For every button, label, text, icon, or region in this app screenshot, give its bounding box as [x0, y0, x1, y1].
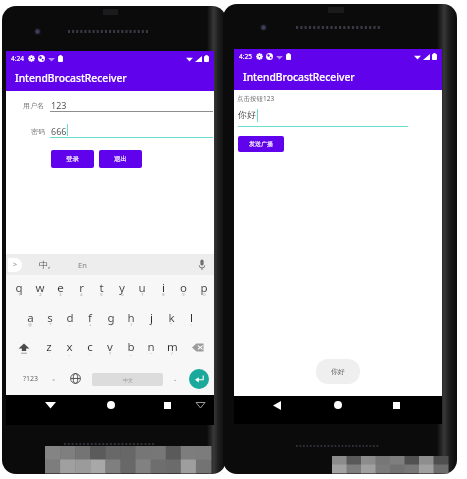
- staticText: !: [150, 322, 152, 327]
- staticText: ?123: [23, 374, 39, 384]
- staticText: 你好: [238, 109, 256, 120]
- staticText: b: [127, 339, 135, 355]
- staticText: /: [171, 351, 173, 356]
- button[interactable]: q: [9, 280, 29, 302]
- button[interactable]: l: [181, 310, 201, 332]
- button[interactable]: k: [161, 310, 181, 332]
- staticText: IntendBrocastReceiver: [15, 71, 127, 85]
- button[interactable]: d: [60, 310, 80, 332]
- staticText: h: [127, 310, 135, 326]
- button[interactable]: Switch keyboard: [196, 402, 205, 408]
- button[interactable]: p: [194, 280, 214, 302]
- button[interactable]: y: [112, 280, 132, 302]
- staticText: IntendBrocastReceiver: [243, 70, 355, 84]
- staticText: 退出: [114, 155, 127, 163]
- staticText: a: [27, 310, 34, 326]
- button[interactable]: 登录: [51, 150, 94, 168]
- staticText: ": [170, 322, 172, 327]
- button[interactable]: e: [50, 280, 70, 302]
- staticText: i: [162, 280, 165, 296]
- staticText: .: [174, 372, 177, 383]
- button[interactable]: g: [101, 310, 121, 332]
- staticText: +: [89, 322, 92, 327]
- staticText: 4:25: [239, 52, 252, 61]
- button[interactable]: Change keyboard: [70, 373, 81, 384]
- button[interactable]: 中文: [92, 373, 163, 386]
- button[interactable]: Enter: [189, 369, 209, 389]
- button[interactable]: z: [39, 339, 59, 361]
- staticText: _: [130, 351, 132, 356]
- staticText: d: [66, 310, 74, 326]
- button[interactable]: 。: [49, 368, 63, 386]
- staticText: 中文: [123, 377, 133, 383]
- staticText: 3: [59, 292, 62, 297]
- staticText: u: [138, 280, 146, 296]
- staticText: 7: [141, 292, 144, 297]
- button[interactable]: Back: [273, 401, 281, 410]
- staticText: 1: [18, 292, 21, 297]
- button[interactable]: 发送广播: [238, 136, 284, 152]
- staticText: e: [57, 280, 64, 296]
- button[interactable]: u: [132, 280, 152, 302]
- button[interactable]: Shift: [18, 343, 30, 354]
- staticText: g: [107, 310, 115, 326]
- staticText: ): [130, 322, 132, 327]
- staticText: En: [78, 260, 87, 270]
- staticText: n: [147, 339, 155, 355]
- button[interactable]: Voice input: [198, 259, 206, 271]
- staticText: f: [88, 310, 92, 326]
- button[interactable]: Home: [334, 401, 342, 409]
- button[interactable]: j: [141, 310, 161, 332]
- staticText: 中,: [39, 258, 51, 270]
- staticText: 0: [203, 292, 206, 297]
- button[interactable]: Home: [107, 401, 115, 409]
- staticText: 发送广播: [249, 140, 273, 148]
- button[interactable]: f: [80, 310, 100, 332]
- button[interactable]: o: [173, 280, 193, 302]
- button[interactable]: x: [59, 339, 79, 361]
- staticText: 登录: [66, 155, 79, 163]
- staticText: q: [15, 280, 23, 296]
- staticText: ?: [109, 351, 111, 356]
- button[interactable]: Close keyboard: [45, 400, 56, 410]
- staticText: c: [87, 339, 93, 355]
- staticText: *: [49, 322, 52, 327]
- staticText: v: [107, 339, 113, 355]
- staticText: s: [47, 310, 53, 326]
- button[interactable]: s: [40, 310, 60, 332]
- button[interactable]: h: [121, 310, 141, 332]
- button[interactable]: n: [141, 339, 161, 361]
- staticText: ,: [68, 351, 70, 356]
- button[interactable]: r: [71, 280, 91, 302]
- button[interactable]: 退出: [99, 150, 142, 168]
- staticText: z: [46, 339, 52, 355]
- staticText: -: [69, 322, 71, 327]
- staticText: 8: [162, 292, 165, 297]
- staticText: :: [190, 322, 192, 327]
- button[interactable]: w: [30, 280, 50, 302]
- button[interactable]: Backspace: [192, 343, 205, 352]
- staticText: 6: [121, 292, 124, 297]
- button[interactable]: Expand suggestions: [8, 258, 22, 272]
- staticText: w: [35, 280, 45, 296]
- staticText: x: [66, 339, 73, 355]
- staticText: @: [28, 322, 32, 327]
- button[interactable]: a: [20, 310, 40, 332]
- staticText: 你好: [331, 367, 345, 376]
- staticText: m: [167, 339, 178, 355]
- button[interactable]: c: [80, 339, 100, 361]
- staticText: 9: [182, 292, 185, 297]
- staticText: 666: [51, 125, 67, 137]
- staticText: r: [79, 280, 84, 296]
- button[interactable]: v: [100, 339, 120, 361]
- button[interactable]: m: [162, 339, 182, 361]
- button[interactable]: t: [91, 280, 111, 302]
- button[interactable]: i: [153, 280, 173, 302]
- button[interactable]: ?123: [17, 372, 45, 385]
- button[interactable]: b: [121, 339, 141, 361]
- button[interactable]: .: [168, 368, 182, 386]
- staticText: l: [190, 310, 193, 326]
- staticText: ~: [150, 351, 153, 356]
